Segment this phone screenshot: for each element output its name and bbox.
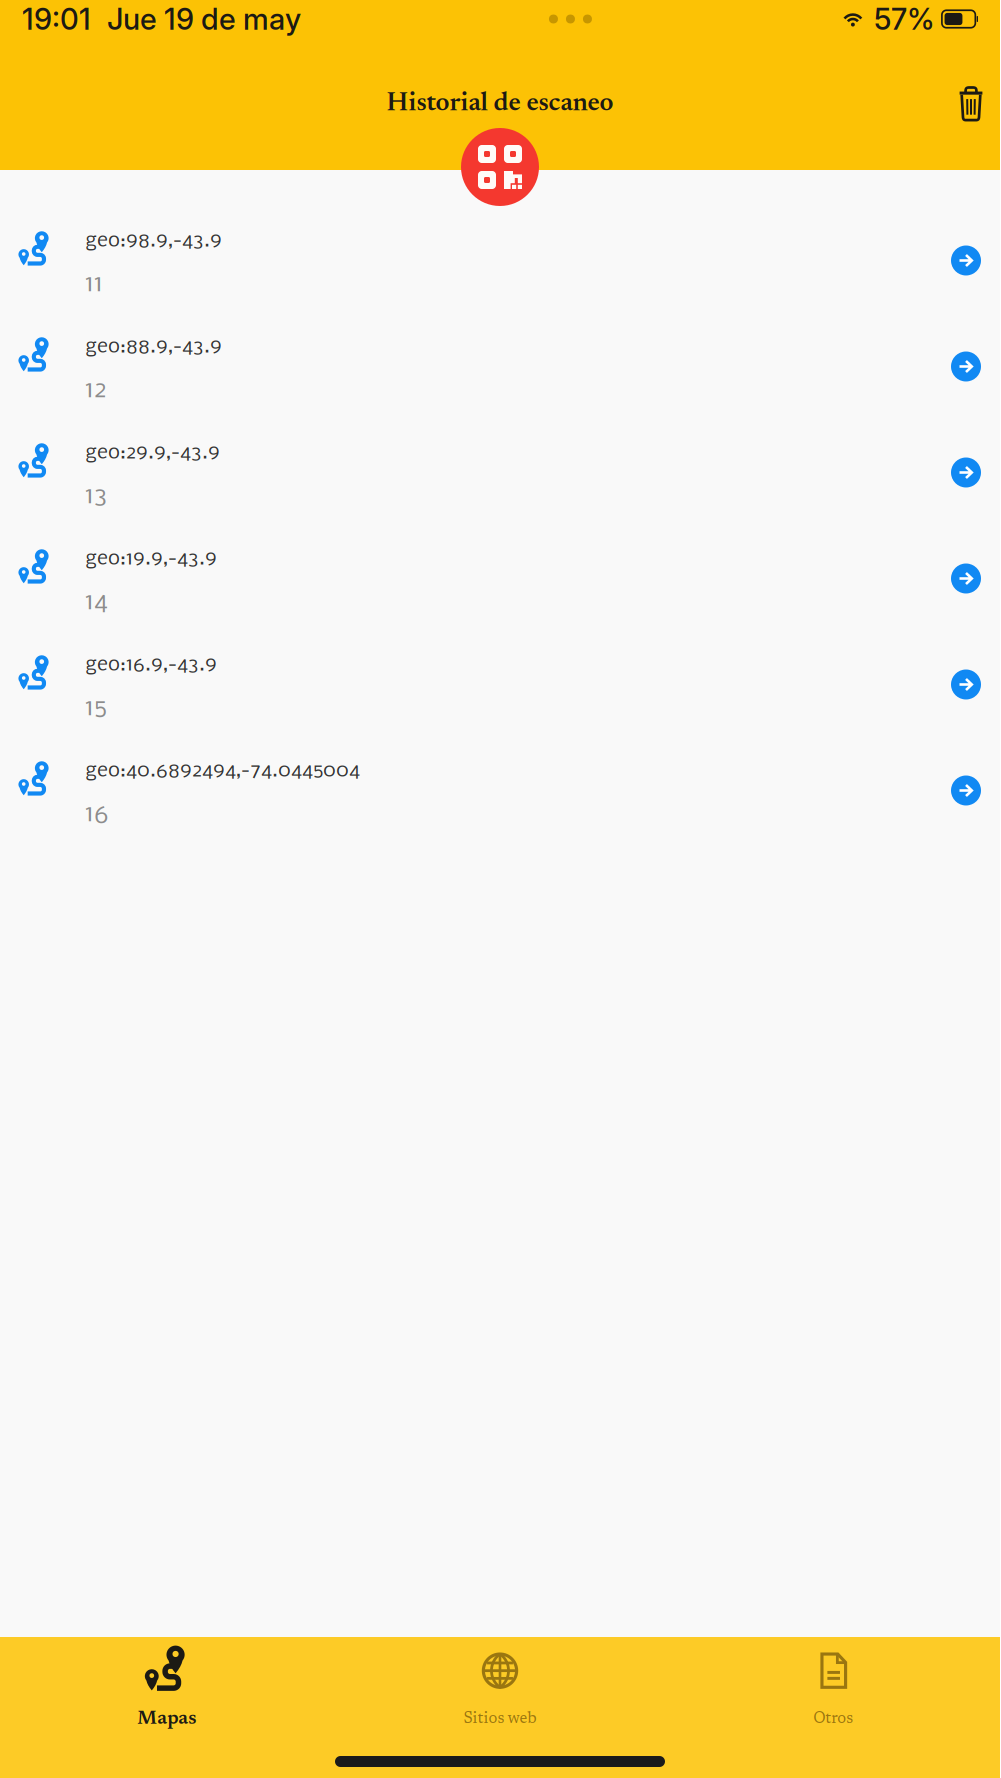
staticText: Otros — [813, 1712, 853, 1727]
button[interactable]: Sitios web — [333, 1639, 667, 1727]
staticText: geo:16.9,-43.9 — [85, 654, 217, 676]
button[interactable]: geo:29.9,-43.9 — [0, 426, 1000, 532]
button[interactable]: geo:88.9,-43.9 — [0, 320, 1000, 426]
staticText: 11 — [85, 271, 103, 298]
staticText: geo:29.9,-43.9 — [85, 442, 220, 464]
button[interactable]: Otros — [667, 1639, 1000, 1727]
staticText: 15 — [85, 695, 107, 722]
button[interactable]: geo:19.9,-43.9 — [0, 532, 1000, 638]
staticText: geo:19.9,-43.9 — [85, 548, 217, 570]
staticText: Mapas — [137, 1710, 196, 1729]
staticText: geo:88.9,-43.9 — [85, 336, 222, 358]
button[interactable]: geo:98.9,-43.9 — [0, 214, 1000, 320]
staticText: 13 — [85, 483, 107, 510]
staticText: Jue 19 de may — [107, 1, 301, 37]
staticText: 57% — [874, 1, 935, 37]
staticText: 14 — [85, 589, 108, 616]
staticText: 12 — [85, 377, 107, 404]
staticText: geo:98.9,-43.9 — [85, 230, 222, 252]
staticText: Sitios web — [463, 1712, 536, 1727]
button[interactable]: geo:16.9,-43.9 — [0, 638, 1000, 744]
staticText: 19:01 — [22, 1, 91, 37]
staticText: 16 — [85, 801, 109, 828]
staticText: geo:40.6892494,-74.0445004 — [85, 760, 360, 782]
staticText: Historial de escaneo — [386, 91, 613, 117]
button[interactable]: geo:40.6892494,-74.0445004 — [0, 744, 1000, 850]
button[interactable]: Borrar historial — [958, 85, 1000, 122]
button[interactable]: Mapas — [0, 1637, 333, 1729]
